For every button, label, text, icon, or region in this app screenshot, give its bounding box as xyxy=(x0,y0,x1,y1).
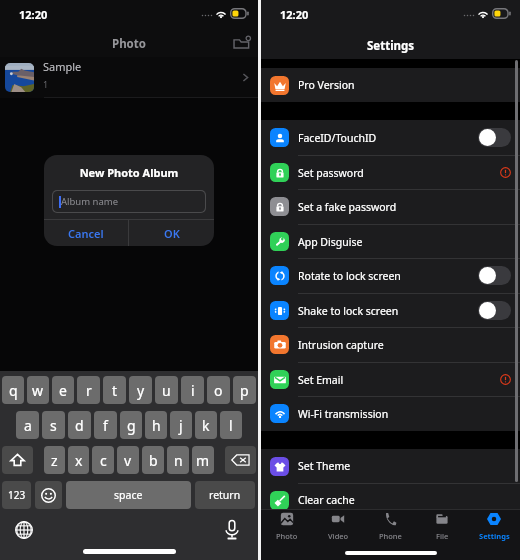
button[interactable]: Set a fake password xyxy=(261,189,520,224)
button[interactable]: Settings xyxy=(468,510,520,542)
staticText: Set Email xyxy=(298,373,344,387)
staticText: y xyxy=(137,381,145,400)
staticText: t xyxy=(112,381,118,400)
staticText: File xyxy=(436,531,449,541)
staticText: z xyxy=(51,451,58,470)
staticText: 12:20 xyxy=(280,7,309,22)
button[interactable]: Photo xyxy=(261,510,312,542)
staticText: space xyxy=(114,488,143,502)
button[interactable]: s xyxy=(42,411,65,439)
button[interactable]: Sample xyxy=(0,57,258,98)
staticText: e xyxy=(59,381,67,400)
button[interactable]: FaceID/TouchID toggle xyxy=(478,128,511,147)
button[interactable]: q xyxy=(2,376,24,404)
staticText: OK xyxy=(164,226,180,241)
button[interactable]: Backspace xyxy=(225,446,256,474)
button[interactable]: l xyxy=(220,411,242,439)
staticText: Wi-Fi transmission xyxy=(298,407,389,421)
button[interactable]: Phone xyxy=(364,510,416,542)
staticText: Phone xyxy=(379,531,402,541)
button[interactable]: w xyxy=(27,376,49,404)
button[interactable]: 123 xyxy=(2,481,31,509)
button[interactable]: p xyxy=(233,376,256,404)
button[interactable]: m xyxy=(192,446,214,474)
staticText: s xyxy=(50,416,57,435)
button[interactable]: Shake to lock screen xyxy=(261,293,520,328)
button[interactable]: r xyxy=(77,376,100,404)
staticText: Photo xyxy=(276,531,298,541)
staticText: n xyxy=(174,451,183,470)
button[interactable]: Video xyxy=(312,510,364,542)
button[interactable]: Album name xyxy=(53,191,205,212)
staticText: Album name xyxy=(61,195,119,208)
button[interactable]: File xyxy=(416,510,468,542)
button[interactable]: Set Theme xyxy=(261,449,520,483)
staticText: Settings xyxy=(479,531,510,541)
button[interactable]: t xyxy=(103,376,126,404)
button[interactable]: Cancel xyxy=(44,220,128,246)
staticText: u xyxy=(162,381,171,400)
button[interactable]: a xyxy=(16,411,39,439)
button[interactable]: Pro Version xyxy=(261,68,520,102)
staticText: f xyxy=(103,416,108,435)
button[interactable]: e xyxy=(52,376,74,404)
button[interactable]: d xyxy=(68,411,91,439)
staticText: w xyxy=(32,381,44,400)
staticText: Sample xyxy=(43,59,82,74)
staticText: q xyxy=(9,381,18,400)
staticText: i xyxy=(191,381,195,400)
staticText: 12:20 xyxy=(19,7,48,22)
button[interactable]: Set Email xyxy=(261,362,520,397)
button[interactable]: j xyxy=(170,411,192,439)
button[interactable]: k xyxy=(195,411,217,439)
button[interactable]: Dictation xyxy=(219,517,245,543)
staticText: App Disguise xyxy=(298,235,363,249)
button[interactable]: v xyxy=(117,446,139,474)
staticText: Intrusion capture xyxy=(298,338,384,352)
button[interactable]: u xyxy=(155,376,178,404)
button[interactable]: return xyxy=(195,481,255,509)
button[interactable]: x xyxy=(68,446,89,474)
staticText: p xyxy=(240,381,249,400)
staticText: Set a fake password xyxy=(298,200,397,214)
button[interactable]: Shift xyxy=(2,446,33,474)
button[interactable]: b xyxy=(142,446,164,474)
staticText: v xyxy=(124,451,132,470)
button[interactable]: Rotate to lock screen toggle xyxy=(478,266,511,285)
staticText: x xyxy=(75,451,83,470)
staticText: l xyxy=(229,416,233,435)
button[interactable]: g xyxy=(120,411,142,439)
button[interactable]: Change keyboard xyxy=(11,517,37,543)
staticText: New Photo Album xyxy=(44,165,214,180)
staticText: Video xyxy=(328,531,349,541)
staticText: o xyxy=(214,381,223,400)
button[interactable]: OK xyxy=(129,220,214,246)
staticText: FaceID/TouchID xyxy=(298,131,377,145)
button[interactable]: z xyxy=(44,446,65,474)
button[interactable]: Intrusion capture xyxy=(261,327,520,362)
button[interactable]: f xyxy=(94,411,117,439)
button[interactable]: Rotate to lock screen xyxy=(261,258,520,293)
button[interactable]: App Disguise xyxy=(261,224,520,259)
staticText: Set Theme xyxy=(298,459,351,473)
button[interactable]: n xyxy=(167,446,189,474)
staticText: Pro Version xyxy=(298,78,355,92)
button[interactable]: Emoji xyxy=(35,481,62,509)
button[interactable]: Clear cache xyxy=(261,483,520,517)
button[interactable]: New album xyxy=(230,31,252,53)
staticText: d xyxy=(75,416,84,435)
button[interactable]: o xyxy=(207,376,230,404)
button[interactable]: Shake to lock screen toggle xyxy=(478,301,511,320)
button[interactable]: FaceID/TouchID xyxy=(261,120,520,155)
button[interactable]: i xyxy=(181,376,204,404)
button[interactable]: Set password xyxy=(261,155,520,190)
button[interactable]: y xyxy=(129,376,152,404)
button[interactable]: c xyxy=(92,446,114,474)
staticText: k xyxy=(202,416,210,435)
button[interactable]: h xyxy=(145,411,167,439)
staticText: Shake to lock screen xyxy=(298,304,399,318)
button[interactable]: Wi-Fi transmission xyxy=(261,396,520,431)
staticText: b xyxy=(149,451,158,470)
staticText: Cancel xyxy=(68,226,104,241)
button[interactable]: space xyxy=(66,481,191,509)
